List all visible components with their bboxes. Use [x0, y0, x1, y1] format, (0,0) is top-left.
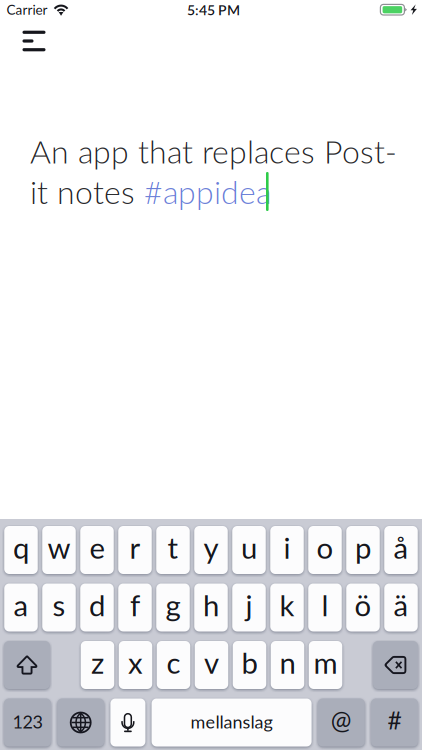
button[interactable]: g [156, 583, 190, 631]
staticText: k [279, 587, 294, 623]
staticText: @ [331, 705, 352, 734]
staticText: c [166, 645, 180, 680]
staticText: g [165, 587, 180, 623]
staticText: l [321, 587, 328, 623]
button[interactable]: Formatting [12, 21, 56, 61]
button[interactable]: h [194, 583, 228, 631]
staticText: An app that replaces Post-it notes #appi… [30, 132, 397, 211]
button[interactable]: r [118, 526, 152, 574]
button[interactable]: t [156, 526, 190, 574]
button[interactable]: å [384, 526, 418, 574]
staticText: Carrier [6, 1, 47, 18]
staticText: m [313, 645, 337, 680]
staticText: i [283, 530, 290, 565]
staticText: f [130, 587, 140, 623]
button[interactable]: a [4, 583, 38, 631]
button[interactable]: s [42, 583, 76, 631]
button[interactable]: # [371, 698, 418, 746]
button[interactable]: 123 [4, 698, 51, 746]
staticText: j [245, 587, 252, 623]
button[interactable]: @ [318, 698, 365, 746]
staticText: r [129, 530, 140, 565]
staticText: w [47, 530, 70, 565]
button[interactable]: w [42, 526, 76, 574]
staticText: 123 [12, 711, 42, 732]
button[interactable]: v [195, 641, 228, 689]
button[interactable]: b [233, 641, 266, 689]
staticText: a [13, 587, 28, 623]
button[interactable]: m [309, 641, 342, 689]
staticText: n [279, 645, 295, 680]
staticText: x [128, 645, 143, 680]
button[interactable]: p [346, 526, 380, 574]
staticText: ä [393, 587, 408, 623]
staticText: s [52, 587, 65, 623]
button[interactable]: z [81, 641, 114, 689]
staticText: y [203, 530, 218, 565]
button[interactable]: k [270, 583, 304, 631]
button[interactable]: Shift [4, 641, 50, 689]
staticText: h [203, 587, 219, 623]
staticText: q [13, 530, 29, 565]
staticText: mellanslag [191, 711, 273, 732]
staticText: 5:45 PM [187, 1, 240, 18]
button[interactable]: d [80, 583, 114, 631]
staticText: b [241, 645, 257, 680]
button[interactable]: n [271, 641, 304, 689]
button[interactable]: c [157, 641, 190, 689]
staticText: u [241, 530, 257, 565]
staticText: t [167, 530, 178, 565]
staticText: z [91, 645, 104, 680]
button[interactable]: Next keyboard [57, 698, 104, 746]
staticText: v [204, 645, 219, 680]
staticText: d [89, 587, 105, 623]
button[interactable]: q [4, 526, 38, 574]
staticText: e [89, 530, 104, 565]
staticText: p [355, 530, 371, 565]
button[interactable]: x [119, 641, 152, 689]
button[interactable]: ä [384, 583, 418, 631]
button[interactable]: u [232, 526, 266, 574]
button[interactable]: ö [346, 583, 380, 631]
button[interactable]: e [80, 526, 114, 574]
button[interactable]: f [118, 583, 152, 631]
button[interactable]: Dictate [110, 698, 145, 746]
button[interactable]: y [194, 526, 228, 574]
button[interactable]: l [308, 583, 342, 631]
button[interactable]: Delete [373, 641, 418, 689]
button[interactable]: j [232, 583, 266, 631]
staticText: å [393, 530, 408, 565]
button[interactable]: i [270, 526, 304, 574]
staticText: # [387, 705, 401, 735]
staticText: o [316, 530, 333, 565]
staticText: ö [354, 587, 371, 623]
button[interactable]: mellanslag [152, 698, 312, 746]
button[interactable]: o [308, 526, 342, 574]
